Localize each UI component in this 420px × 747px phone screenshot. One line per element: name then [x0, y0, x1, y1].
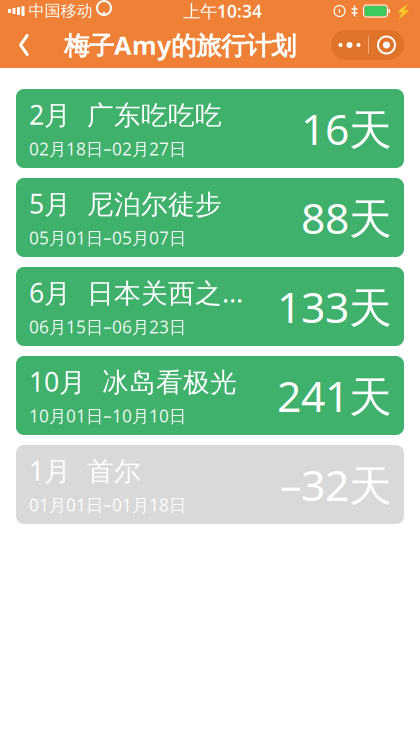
staticText: 05月01日–05月07日	[29, 226, 186, 249]
staticText: 6月 日本关西之旅（待	[29, 275, 261, 310]
staticText: 梅子Amy的旅行计划	[64, 28, 296, 62]
staticText: 88天	[301, 189, 392, 246]
button[interactable]: 5月 尼泊尔徒步	[16, 178, 404, 257]
staticText: 5月 尼泊尔徒步	[29, 186, 222, 221]
button[interactable]: 更多	[331, 30, 368, 60]
staticText: 10月01日–10月10日	[29, 404, 186, 427]
button[interactable]: 返回	[0, 22, 48, 68]
button[interactable]: 2月 广东吃吃吃	[16, 89, 404, 168]
staticText: 241天	[277, 367, 392, 424]
staticText: 133天	[277, 278, 392, 335]
button[interactable]: 10月 冰岛看极光	[16, 356, 404, 435]
button[interactable]: 6月 日本关西之旅（待	[16, 267, 404, 346]
staticText: 01月01日–01月18日	[29, 493, 186, 516]
staticText: 2月 广东吃吃吃	[29, 97, 222, 132]
button[interactable]: 目标	[369, 30, 404, 60]
staticText: 1月 首尔	[29, 453, 141, 488]
staticText: 中国移动	[28, 1, 92, 21]
staticText: –32天	[280, 456, 392, 513]
staticText: 02月18日–02月27日	[29, 137, 186, 160]
staticText: 06月15日–06月23日	[29, 315, 186, 338]
staticText: ⚡	[395, 3, 412, 19]
staticText: 16天	[301, 100, 392, 157]
staticText: 上午10:34	[183, 0, 262, 22]
button[interactable]: 1月 首尔	[16, 445, 404, 524]
staticText: 10月 冰岛看极光	[29, 364, 237, 399]
